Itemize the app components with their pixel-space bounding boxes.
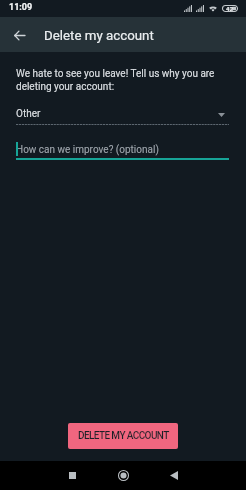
button[interactable]: Back — [161, 462, 187, 488]
button[interactable]: DELETE MY ACCOUNT — [68, 423, 178, 449]
staticText: DELETE MY ACCOUNT — [78, 430, 169, 442]
button[interactable]: Recents — [59, 462, 85, 488]
button[interactable]: Home — [110, 462, 136, 488]
button[interactable]: Back — [7, 23, 31, 47]
staticText: How can we improve? (optional) — [16, 144, 159, 156]
button[interactable]: How can we improve? (optional) — [16, 144, 229, 160]
staticText: Other — [16, 108, 41, 120]
staticText: 42 — [226, 5, 233, 12]
staticText: We hate to see you leave! Tell us why yo… — [16, 68, 232, 93]
button[interactable]: Other — [16, 108, 229, 125]
staticText: 11:09 — [9, 2, 33, 13]
staticText: Delete my account — [44, 28, 154, 44]
